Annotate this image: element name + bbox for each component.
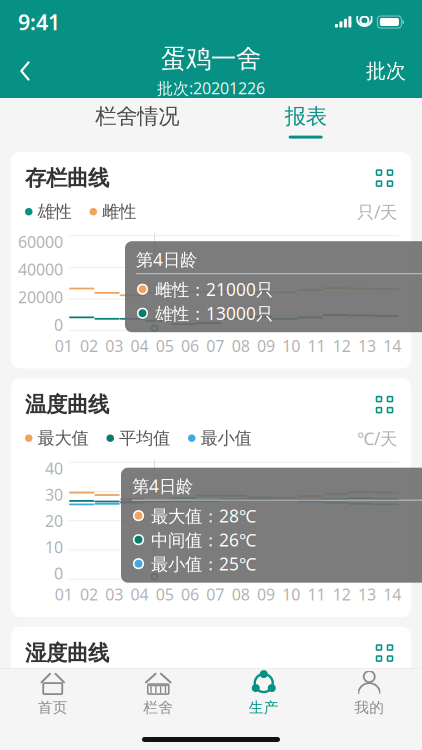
- staticText: 批次: [366, 59, 406, 83]
- staticText: 只/天: [357, 200, 397, 223]
- button[interactable]: 首页: [0, 669, 105, 719]
- staticText: 栏舍情况: [95, 103, 179, 130]
- button[interactable]: 全屏显示湿度曲线: [372, 640, 397, 665]
- staticText: 首页: [38, 699, 68, 717]
- staticText: 07: [206, 584, 224, 605]
- staticText: 温度曲线: [25, 391, 109, 418]
- staticText: 第4日龄: [132, 723, 193, 746]
- staticText: 06: [181, 335, 199, 356]
- staticText: 中间值：26℃: [151, 528, 256, 551]
- staticText: 01: [55, 335, 73, 356]
- staticText: 08: [232, 584, 250, 605]
- staticText: 01: [55, 584, 73, 605]
- staticText: 40: [45, 458, 63, 479]
- staticText: 报表: [285, 103, 327, 130]
- button[interactable]: 生产: [211, 669, 316, 719]
- button[interactable]: 全屏显示存栏曲线: [372, 166, 397, 191]
- staticText: 10: [282, 335, 300, 356]
- staticText: 14: [383, 335, 401, 356]
- staticText: ℃/天: [357, 427, 397, 450]
- staticText: 08: [232, 335, 250, 356]
- button[interactable]: 批次: [350, 44, 422, 98]
- staticText: 12: [333, 584, 351, 605]
- staticText: 最大值: [37, 427, 88, 449]
- staticText: 雄性: [37, 201, 71, 222]
- button[interactable]: 栏舍: [105, 669, 211, 719]
- staticText: 04: [130, 335, 148, 356]
- staticText: 02: [80, 584, 98, 605]
- staticText: 60000: [18, 231, 63, 252]
- button[interactable]: 栏舍情况: [85, 98, 189, 144]
- staticText: 最小值：25℃: [151, 552, 256, 575]
- button[interactable]: 返回: [0, 44, 50, 98]
- staticText: 第4日龄: [136, 248, 197, 271]
- staticText: 最小值: [200, 427, 251, 449]
- staticText: 14: [383, 584, 401, 605]
- staticText: 最大值：28℃: [151, 504, 256, 527]
- staticText: 30: [45, 484, 63, 505]
- staticText: 存栏曲线: [25, 165, 109, 191]
- staticText: %/天: [360, 675, 397, 698]
- staticText: 栏舍: [143, 699, 173, 717]
- button[interactable]: 报表: [275, 98, 337, 144]
- staticText: 雌性: [102, 201, 136, 222]
- staticText: 10: [45, 536, 63, 557]
- button[interactable]: 全屏显示温度曲线: [372, 392, 397, 417]
- staticText: 20: [45, 510, 63, 531]
- staticText: 蛋鸡一舍: [161, 43, 261, 74]
- staticText: 平均值: [119, 427, 170, 449]
- staticText: 02: [80, 335, 98, 356]
- staticText: 12: [333, 335, 351, 356]
- staticText: 0: [54, 314, 63, 335]
- staticText: 09: [257, 335, 275, 356]
- staticText: 批次:20201226: [157, 77, 265, 99]
- staticText: 20000: [18, 286, 63, 308]
- staticText: 0: [54, 563, 63, 584]
- staticText: 13: [358, 584, 376, 605]
- staticText: 13: [358, 335, 376, 356]
- staticText: 第4日龄: [132, 474, 193, 497]
- staticText: 9:41: [18, 8, 60, 36]
- staticText: 最大值: [37, 676, 88, 697]
- staticText: 我的: [354, 699, 384, 717]
- staticText: 湿度曲线: [25, 640, 109, 666]
- staticText: 04: [130, 584, 148, 605]
- staticText: 03: [105, 335, 123, 356]
- staticText: 09: [257, 584, 275, 605]
- staticText: 03: [105, 584, 123, 605]
- staticText: 10: [282, 584, 300, 605]
- staticText: 06: [181, 584, 199, 605]
- staticText: 雌性：21000只: [155, 278, 273, 301]
- staticText: 40000: [18, 259, 63, 280]
- staticText: 平均值: [119, 676, 170, 697]
- staticText: 100: [36, 706, 63, 727]
- staticText: 05: [156, 584, 174, 605]
- staticText: 07: [206, 335, 224, 356]
- button[interactable]: 我的: [316, 669, 422, 719]
- staticText: 雄性：13000只: [155, 302, 273, 325]
- staticText: 11: [307, 335, 325, 356]
- staticText: 11: [307, 584, 325, 605]
- staticText: 05: [156, 335, 174, 356]
- staticText: 生产: [249, 699, 279, 717]
